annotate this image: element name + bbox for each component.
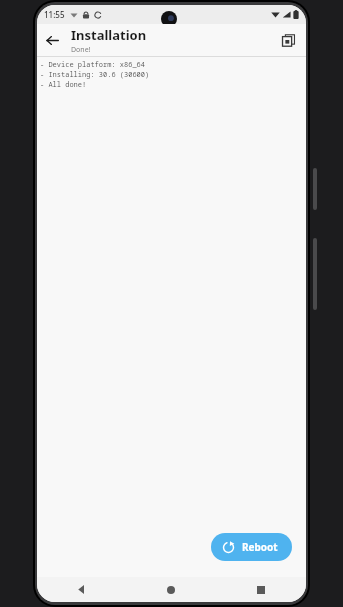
staticText: Done! (71, 45, 91, 55)
button[interactable]: Save log (273, 25, 303, 55)
button[interactable]: Reboot (211, 533, 292, 561)
button[interactable]: Recent apps (216, 577, 306, 602)
staticText: - Device platform: x86_64 (40, 60, 145, 70)
staticText: - Installing: 30.6 (30600) (40, 70, 150, 80)
staticText: 11:55 (44, 9, 65, 20)
button[interactable]: Home (126, 577, 216, 602)
staticText: Installation (71, 26, 147, 44)
button[interactable]: Back (37, 25, 67, 55)
staticText: Reboot (242, 540, 278, 554)
button[interactable]: Back (37, 577, 126, 602)
staticText: - All done! (40, 80, 87, 90)
